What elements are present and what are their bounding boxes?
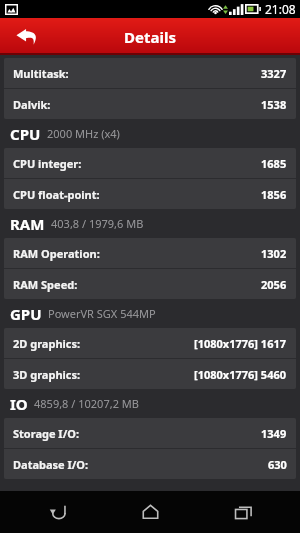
staticText: PowerVR SGX 544MP <box>48 306 156 321</box>
staticText: 630 <box>268 457 287 472</box>
staticText: Storage I/O: <box>13 426 80 441</box>
staticText: 3327 <box>261 66 287 81</box>
staticText: CPU integer: <box>13 156 82 171</box>
button[interactable]: Storage I/O: <box>4 418 296 448</box>
staticText: IO <box>10 394 28 414</box>
staticText: 3D graphics: <box>13 367 81 382</box>
staticText: 2056 <box>261 277 287 292</box>
button[interactable]: RAM Operation: <box>4 238 296 268</box>
staticText: 1349 <box>261 426 287 441</box>
button[interactable]: Dalvik: <box>4 89 296 119</box>
staticText: 21:08 <box>265 1 296 17</box>
staticText: 1302 <box>261 246 287 261</box>
button[interactable]: RAM Speed: <box>4 269 296 299</box>
staticText: RAM Operation: <box>13 246 100 261</box>
button[interactable]: Home <box>115 491 185 533</box>
staticText: RAM <box>10 214 45 234</box>
staticText: 1538 <box>261 97 287 112</box>
staticText: [1080x1776] 1617 <box>194 336 287 351</box>
staticText: 1685 <box>261 156 287 171</box>
staticText: RAM Speed: <box>13 277 78 292</box>
staticText: CPU float-point: <box>13 187 100 202</box>
button[interactable]: Multitask: <box>4 58 296 88</box>
button[interactable]: CPU float-point: <box>4 179 296 209</box>
staticText: GPU <box>10 304 42 324</box>
staticText: Database I/O: <box>13 457 89 472</box>
staticText: CPU <box>10 124 41 144</box>
button[interactable]: Recent apps <box>208 491 278 533</box>
staticText: [1080x1776] 5460 <box>194 367 287 382</box>
staticText: 403,8 / 1979,6 MB <box>51 216 144 231</box>
button[interactable]: 2D graphics: <box>4 328 296 358</box>
button[interactable]: Database I/O: <box>4 449 296 479</box>
staticText: 4859,8 / 10207,2 MB <box>34 396 139 411</box>
staticText: 2D graphics: <box>13 336 81 351</box>
staticText: Details <box>124 27 176 47</box>
staticText: Multitask: <box>13 66 69 81</box>
button[interactable]: Back <box>23 491 93 533</box>
button[interactable]: 3D graphics: <box>4 359 296 389</box>
staticText: 2000 MHz (x4) <box>47 126 120 141</box>
staticText: 1856 <box>261 187 287 202</box>
button[interactable]: CPU integer: <box>4 148 296 178</box>
button[interactable]: Back <box>0 18 52 55</box>
staticText: Dalvik: <box>13 97 51 112</box>
